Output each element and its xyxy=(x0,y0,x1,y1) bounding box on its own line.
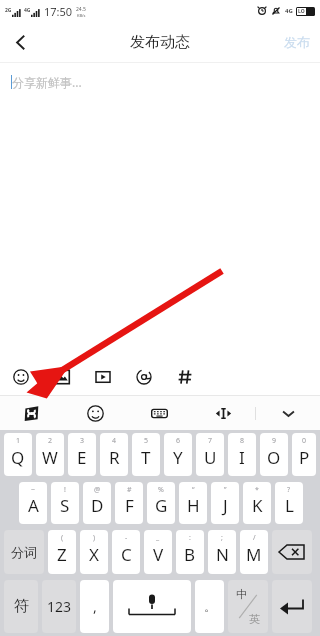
button[interactable]: 123 xyxy=(42,580,76,633)
button[interactable]: 图片 xyxy=(49,364,75,390)
staticText: I xyxy=(239,446,245,469)
staticText: Q xyxy=(11,446,25,469)
staticText: 符 xyxy=(14,597,29,616)
staticText: 9 xyxy=(272,436,277,446)
staticText: 4 xyxy=(112,436,117,446)
button[interactable]: S xyxy=(51,482,79,524)
staticText: M xyxy=(246,543,262,566)
staticText: X xyxy=(89,543,99,566)
button[interactable]: 表情 xyxy=(8,364,34,390)
staticText: ) xyxy=(93,533,96,543)
button[interactable]: 退格 xyxy=(272,530,312,574)
staticText: J xyxy=(223,494,228,517)
button[interactable]: J xyxy=(211,482,239,524)
button[interactable]: 提及好友 xyxy=(131,364,157,390)
button[interactable]: W xyxy=(36,433,64,476)
staticText: 分词 xyxy=(11,544,37,560)
staticText: 0 xyxy=(302,436,307,446)
button[interactable]: V xyxy=(144,530,172,574)
button[interactable]: K xyxy=(243,482,271,524)
button[interactable]: Q xyxy=(4,433,32,476)
staticText: ( xyxy=(61,533,64,543)
button[interactable]: A xyxy=(19,482,47,524)
button[interactable]: H xyxy=(179,482,207,524)
staticText: 中 xyxy=(236,587,247,601)
staticText: E xyxy=(77,446,87,469)
staticText: 6 xyxy=(176,436,181,446)
staticText: 4G xyxy=(285,7,293,15)
button[interactable]: 回车 xyxy=(272,580,312,633)
button[interactable]: 移动光标 xyxy=(191,396,255,430)
button[interactable]: 输入法 xyxy=(0,396,63,430)
button[interactable]: I xyxy=(228,433,256,476)
button[interactable]: 键盘设置 xyxy=(127,396,191,430)
button[interactable]: G xyxy=(147,482,175,524)
staticText: LO xyxy=(298,8,305,15)
staticText: , xyxy=(93,597,97,616)
staticText: ; xyxy=(221,533,223,543)
staticText: ~ xyxy=(31,485,36,495)
staticText: S xyxy=(60,494,70,517)
button[interactable]: R xyxy=(100,433,128,476)
staticText: 发布动态 xyxy=(130,33,190,52)
button[interactable]: 视频 xyxy=(90,364,116,390)
button[interactable]: 空格 xyxy=(113,580,191,633)
button[interactable]: X xyxy=(80,530,108,574)
staticText: 8 xyxy=(240,436,245,446)
button[interactable]: 分词 xyxy=(4,530,44,574)
staticText: - xyxy=(125,533,128,543)
button[interactable]: B xyxy=(176,530,204,574)
button[interactable]: , xyxy=(80,580,109,633)
staticText: 123 xyxy=(47,597,72,616)
button[interactable]: 返回 xyxy=(0,22,40,62)
button[interactable]: 话题 xyxy=(172,364,198,390)
staticText: KB/s xyxy=(77,13,86,18)
staticText: T xyxy=(141,446,151,469)
staticText: “ xyxy=(192,485,195,495)
staticText: % xyxy=(158,485,164,495)
button[interactable]: T xyxy=(132,433,160,476)
staticText: Z xyxy=(57,543,67,566)
staticText: 7 xyxy=(208,436,213,446)
staticText: ! xyxy=(64,485,66,495)
staticText: O xyxy=(267,446,281,469)
staticText: F xyxy=(125,494,134,517)
button[interactable]: U xyxy=(196,433,224,476)
button[interactable]: E xyxy=(68,433,96,476)
staticText: U xyxy=(204,446,217,469)
staticText: 分享新鲜事... xyxy=(12,74,82,90)
button[interactable]: D xyxy=(83,482,111,524)
staticText: 3 xyxy=(80,436,85,446)
button[interactable]: 表情 xyxy=(63,396,127,430)
button[interactable]: O xyxy=(260,433,288,476)
button[interactable]: F xyxy=(115,482,143,524)
staticText: 5 xyxy=(144,436,149,446)
staticText: ? xyxy=(287,485,291,495)
button[interactable]: N xyxy=(208,530,236,574)
button[interactable]: 发布 xyxy=(284,22,310,62)
staticText: : xyxy=(189,533,191,543)
button[interactable]: C xyxy=(112,530,140,574)
staticText: 2G xyxy=(5,7,12,14)
staticText: _ xyxy=(156,533,160,543)
button[interactable]: Y xyxy=(164,433,192,476)
staticText: W xyxy=(42,446,58,469)
staticText: @ xyxy=(94,485,101,495)
staticText: # xyxy=(127,485,132,495)
button[interactable]: 符 xyxy=(4,580,38,633)
staticText: B xyxy=(184,543,196,566)
staticText: P xyxy=(299,446,310,469)
staticText: D xyxy=(91,494,104,517)
staticText: 英 xyxy=(249,612,260,626)
button[interactable]: Z xyxy=(48,530,76,574)
button[interactable]: 收起键盘 xyxy=(256,396,320,430)
button[interactable]: M xyxy=(240,530,268,574)
button[interactable]: L xyxy=(275,482,303,524)
button[interactable]: 。 xyxy=(195,580,224,633)
staticText: K xyxy=(252,494,263,517)
staticText: 2 xyxy=(48,436,53,446)
staticText: / xyxy=(253,533,256,543)
button[interactable]: P xyxy=(292,433,316,476)
button[interactable]: 中英切换 xyxy=(228,580,268,633)
staticText: Y xyxy=(173,446,183,469)
